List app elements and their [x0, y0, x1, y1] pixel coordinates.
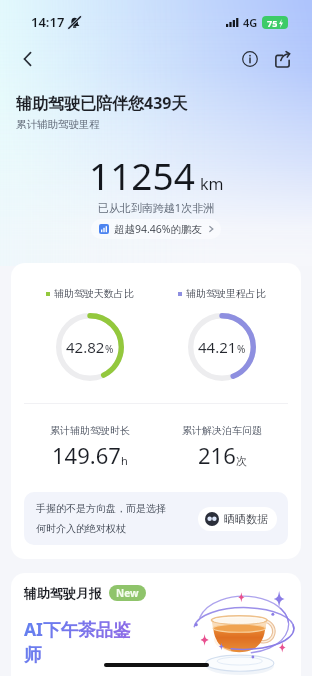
- button[interactable]: Share: [270, 47, 294, 71]
- staticText: 已从北到南跨越1次非洲: [0, 200, 312, 215]
- staticText: New: [116, 586, 139, 600]
- staticText: 晒晒数据: [224, 512, 268, 526]
- staticText: %: [237, 342, 246, 356]
- button[interactable]: Info: [238, 47, 262, 71]
- staticText: 11254: [89, 150, 195, 200]
- staticText: 辅助驾驶已陪伴您439天: [16, 92, 188, 114]
- staticText: 辅助驾驶里程占比: [186, 287, 266, 300]
- staticText: 44.21: [198, 337, 237, 357]
- staticText: 累计辅助驾驶时长: [50, 424, 130, 437]
- button[interactable]: Back: [15, 46, 41, 72]
- staticText: km: [200, 173, 224, 195]
- button[interactable]: 晒晒数据: [198, 507, 277, 531]
- staticText: 216: [198, 440, 236, 470]
- button[interactable]: 超越94.46%的鹏友: [91, 219, 221, 239]
- staticText: 累计解决泊车问题: [182, 424, 262, 437]
- staticText: 75: [267, 17, 278, 29]
- staticText: 超越94.46%的鹏友: [114, 222, 203, 236]
- staticText: AI下午茶品鉴师: [24, 617, 134, 667]
- staticText: 42.82: [66, 337, 105, 357]
- staticText: 14:17: [31, 13, 65, 31]
- staticText: 手握的不是方向盘，而是选择 何时介入的绝对权杖: [36, 502, 198, 535]
- staticText: 辅助驾驶月报: [24, 585, 102, 601]
- button[interactable]: 辅助驾驶月报: [11, 573, 301, 676]
- staticText: 149.67: [52, 440, 121, 470]
- staticText: 累计辅助驾驶里程: [16, 118, 100, 131]
- staticText: 辅助驾驶天数占比: [54, 287, 134, 300]
- staticText: 次: [236, 454, 247, 468]
- staticText: %: [105, 342, 114, 356]
- staticText: 4G: [243, 15, 258, 30]
- staticText: h: [121, 453, 128, 468]
